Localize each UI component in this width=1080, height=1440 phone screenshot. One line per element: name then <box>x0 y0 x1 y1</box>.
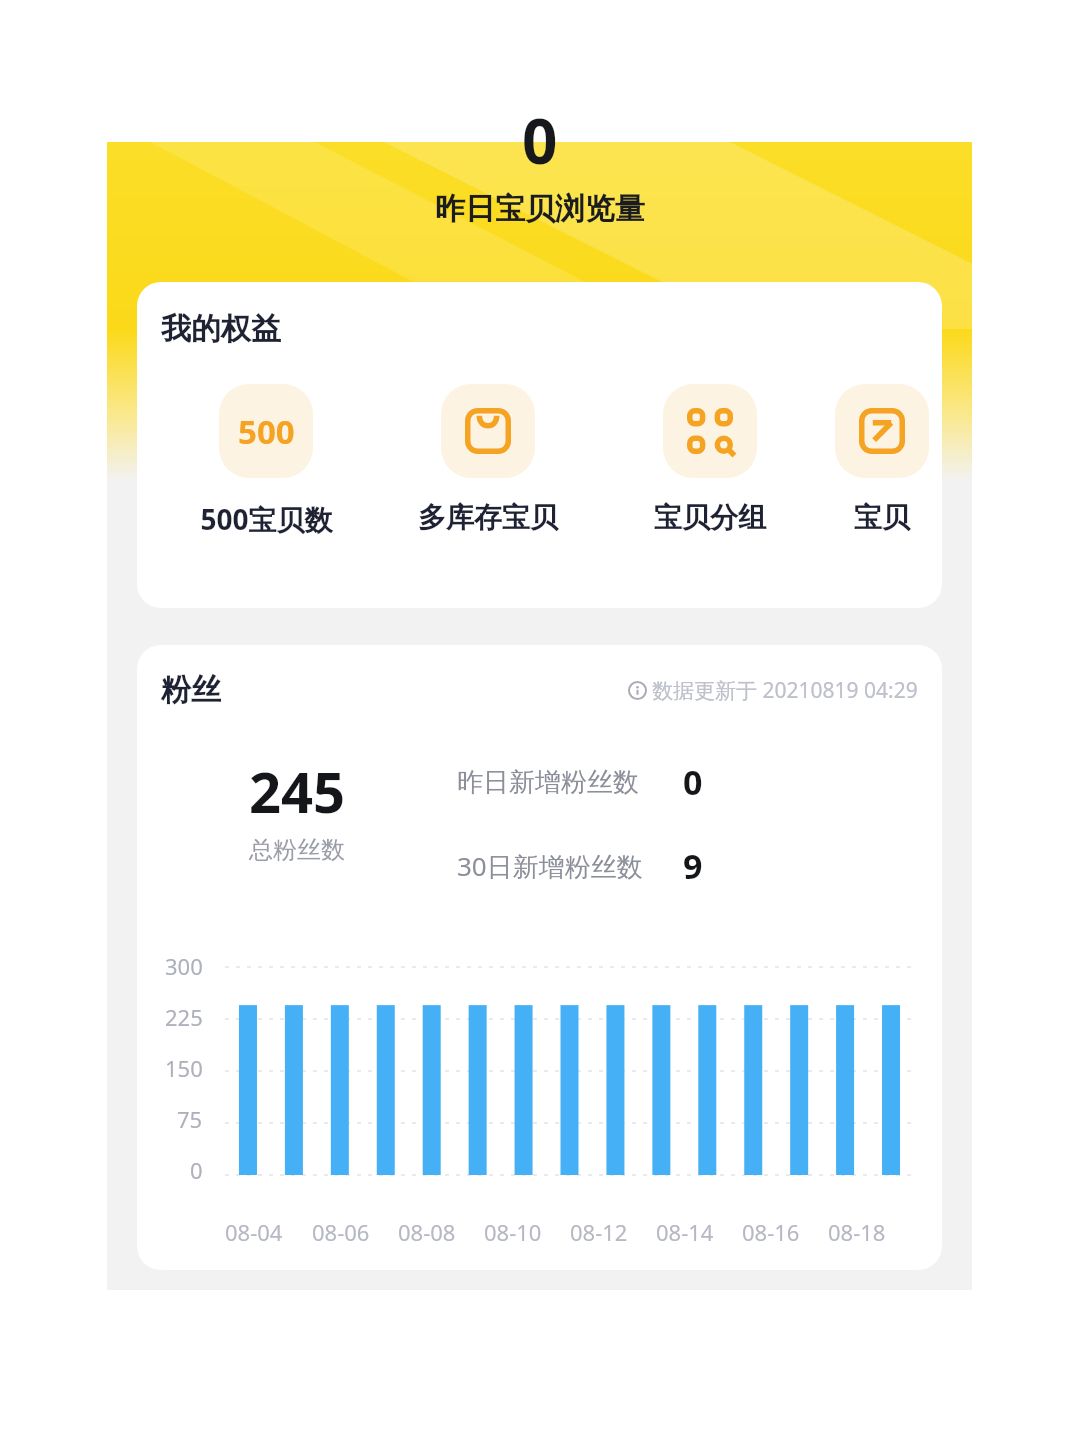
staticText: 宝贝分组 <box>654 500 766 535</box>
staticText: 08-14 <box>656 1217 714 1247</box>
staticText: 数据更新于 20210819 04:29 <box>652 676 918 705</box>
staticText: 宝贝 <box>854 500 910 535</box>
staticText: 0 <box>190 1155 203 1185</box>
staticText: 500宝贝数 <box>200 500 333 538</box>
staticText: 总粉丝数 <box>249 835 345 865</box>
staticText: 75 <box>177 1104 203 1134</box>
button[interactable]: 多库存宝贝 <box>377 384 599 535</box>
staticText: 08-08 <box>398 1217 456 1247</box>
staticText: 昨日宝贝浏览量 <box>435 190 645 228</box>
staticText: 08-04 <box>225 1217 283 1247</box>
staticText: 粉丝 <box>161 671 221 709</box>
staticText: 08-12 <box>570 1217 628 1247</box>
staticText: 150 <box>165 1053 203 1083</box>
staticText: 245 <box>249 753 346 829</box>
button[interactable]: 宝贝 <box>821 384 942 535</box>
staticText: 225 <box>165 1002 203 1032</box>
staticText: 昨日新增粉丝数 <box>457 766 639 799</box>
staticText: 9 <box>683 843 703 889</box>
staticText: 08-16 <box>742 1217 800 1247</box>
staticText: 0 <box>522 98 558 182</box>
staticText: 我的权益 <box>161 310 281 348</box>
staticText: 08-06 <box>312 1217 370 1247</box>
other: 宝贝分组 <box>687 408 733 454</box>
staticText: 300 <box>165 951 203 981</box>
staticText: 30日新增粉丝数 <box>457 848 643 884</box>
staticText: 08-18 <box>828 1217 886 1247</box>
staticText: 08-10 <box>484 1217 542 1247</box>
button[interactable]: 宝贝分组 <box>599 384 821 535</box>
staticText: 500 <box>238 409 295 454</box>
other: 多库存宝贝 <box>465 408 511 454</box>
staticText: 0 <box>683 759 703 805</box>
button[interactable]: 500 <box>155 384 377 538</box>
staticText: 多库存宝贝 <box>418 500 558 535</box>
other: 宝贝 <box>859 408 905 454</box>
